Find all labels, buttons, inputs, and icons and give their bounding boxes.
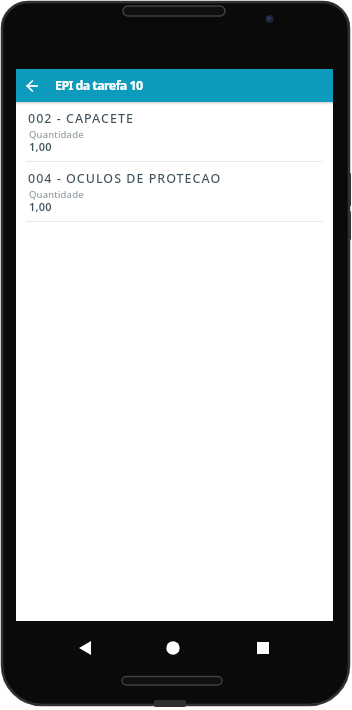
staticText: 002 - CAPACETE — [28, 110, 134, 127]
button[interactable] — [16, 69, 48, 102]
button[interactable] — [149, 630, 197, 666]
button[interactable] — [61, 630, 109, 666]
staticText: 1,00 — [29, 139, 52, 154]
staticText: EPI da tarefa 10 — [55, 77, 143, 94]
button[interactable]: 004 - OCULOS DE PROTECAO — [16, 162, 333, 222]
button[interactable]: 002 - CAPACETE — [16, 102, 333, 162]
button[interactable] — [239, 630, 287, 666]
staticText: 004 - OCULOS DE PROTECAO — [28, 170, 222, 187]
staticText: 1,00 — [29, 199, 52, 214]
staticText: Quantidade — [29, 188, 84, 201]
staticText: Quantidade — [29, 128, 84, 141]
